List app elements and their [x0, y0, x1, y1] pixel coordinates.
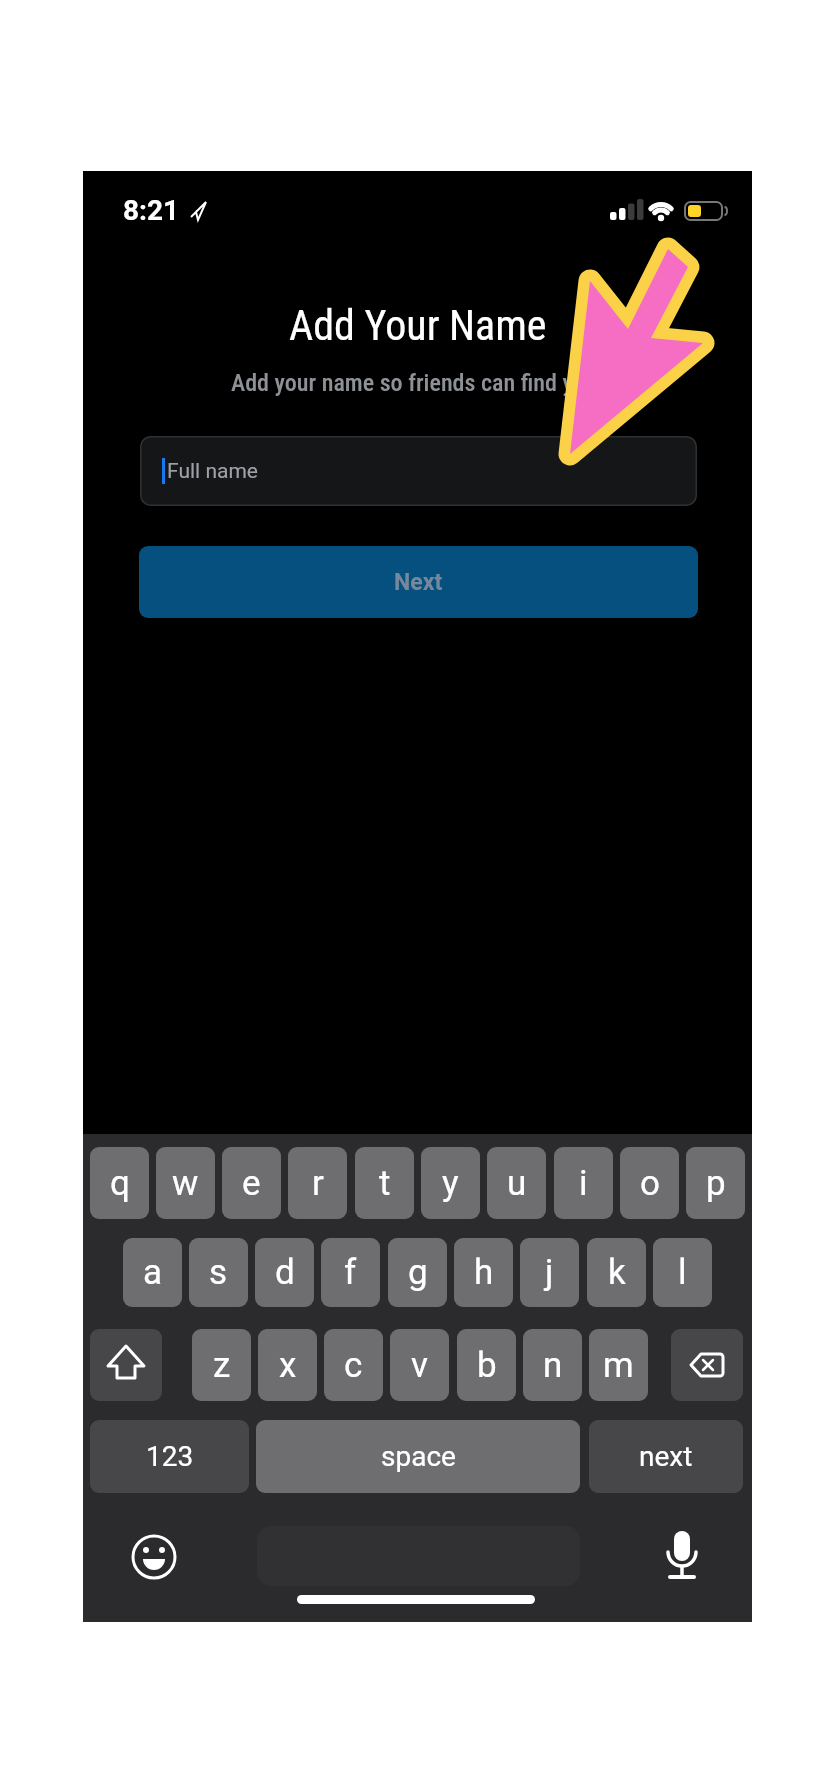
button[interactable]: Full name — [140, 436, 697, 506]
staticText: g — [408, 1252, 428, 1293]
button[interactable]: d — [255, 1238, 314, 1307]
button[interactable]: s — [189, 1238, 248, 1307]
button[interactable]: k — [587, 1238, 646, 1307]
button[interactable]: p — [686, 1147, 745, 1219]
staticText: b — [477, 1345, 497, 1386]
staticText: Add Your Name — [289, 301, 547, 350]
staticText: j — [545, 1252, 554, 1293]
button[interactable] — [90, 1329, 162, 1401]
button[interactable]: t — [355, 1147, 414, 1219]
button[interactable]: 123 — [90, 1420, 249, 1493]
button[interactable] — [671, 1329, 743, 1401]
button[interactable]: g — [388, 1238, 447, 1307]
button[interactable]: l — [653, 1238, 712, 1307]
button[interactable]: m — [589, 1329, 648, 1401]
button[interactable]: r — [288, 1147, 347, 1219]
button[interactable] — [127, 1530, 181, 1584]
staticText: n — [543, 1345, 563, 1386]
button[interactable] — [655, 1527, 709, 1581]
staticText: r — [312, 1163, 324, 1204]
button[interactable]: e — [222, 1147, 281, 1219]
staticText: t — [379, 1163, 391, 1204]
staticText: l — [678, 1252, 687, 1293]
button[interactable]: w — [156, 1147, 215, 1219]
button[interactable]: h — [454, 1238, 513, 1307]
button[interactable]: x — [258, 1329, 317, 1401]
button[interactable]: n — [523, 1329, 582, 1401]
button[interactable]: f — [321, 1238, 380, 1307]
staticText: 123 — [146, 1440, 194, 1473]
staticText: Add your name so friends can find you. — [231, 369, 604, 397]
button[interactable]: space — [256, 1420, 580, 1493]
staticText: y — [442, 1163, 459, 1204]
button[interactable]: next — [589, 1420, 743, 1493]
button[interactable]: z — [192, 1329, 251, 1401]
button[interactable]: Next — [139, 546, 698, 618]
staticText: q — [110, 1163, 130, 1204]
staticText: d — [275, 1252, 295, 1293]
staticText: w — [172, 1163, 199, 1204]
staticText: x — [279, 1345, 297, 1386]
staticText: space — [381, 1440, 456, 1473]
staticText: 8:21 — [123, 194, 180, 226]
staticText: h — [474, 1252, 494, 1293]
staticText: u — [507, 1163, 527, 1204]
button[interactable]: a — [123, 1238, 182, 1307]
staticText: m — [603, 1345, 634, 1386]
staticText: v — [411, 1345, 428, 1386]
staticText: a — [143, 1252, 163, 1293]
button[interactable]: i — [554, 1147, 613, 1219]
staticText: f — [344, 1252, 357, 1293]
button[interactable]: c — [324, 1329, 383, 1401]
button[interactable]: q — [90, 1147, 149, 1219]
staticText: z — [213, 1345, 231, 1386]
staticText: k — [608, 1252, 626, 1293]
button[interactable]: o — [620, 1147, 679, 1219]
staticText: i — [579, 1163, 588, 1204]
staticText: Next — [394, 569, 443, 596]
staticText: next — [639, 1440, 693, 1473]
staticText: Full name — [167, 459, 258, 484]
staticText: o — [640, 1163, 660, 1204]
button[interactable]: u — [487, 1147, 546, 1219]
staticText: s — [209, 1252, 228, 1293]
staticText: p — [706, 1163, 726, 1204]
button[interactable]: v — [390, 1329, 449, 1401]
button[interactable]: y — [421, 1147, 480, 1219]
staticText: c — [344, 1345, 363, 1386]
button[interactable]: j — [520, 1238, 579, 1307]
staticText: e — [242, 1163, 261, 1204]
button[interactable]: b — [457, 1329, 516, 1401]
